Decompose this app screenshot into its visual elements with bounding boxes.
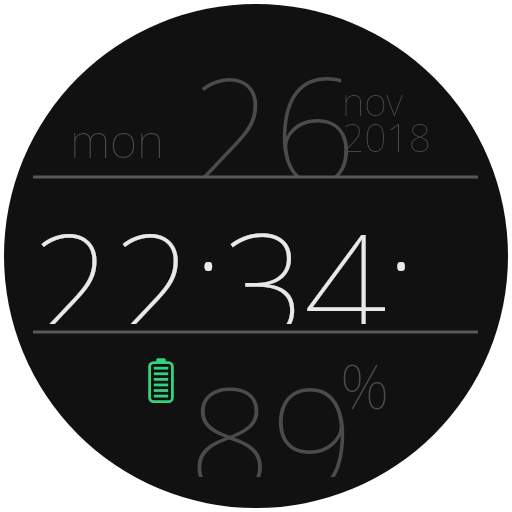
button[interactable]: mon [70, 22, 440, 172]
staticText: 22:34:56 [30, 184, 482, 324]
staticText: 26 [190, 27, 356, 177]
other: Battery 89 percent [146, 358, 176, 404]
staticText: 89 [188, 337, 354, 477]
staticText: mon [70, 108, 164, 172]
button[interactable]: 22:34:56 [30, 184, 482, 324]
staticText: % [340, 343, 390, 427]
staticText: 2018 [342, 110, 431, 163]
button[interactable]: Watch face [4, 4, 508, 508]
staticText: nov [342, 74, 403, 127]
button[interactable]: Battery 89 percent [140, 336, 392, 476]
